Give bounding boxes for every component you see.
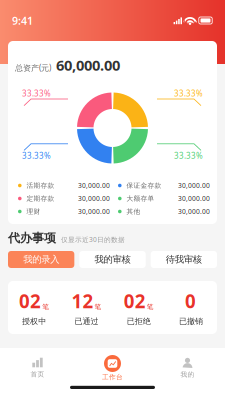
staticText: 首页: [30, 370, 44, 378]
staticText: 已通过: [74, 316, 98, 326]
staticText: 笔: [94, 303, 101, 311]
staticText: 大额存单: [127, 194, 155, 203]
staticText: 活期存款: [27, 181, 55, 190]
staticText: 工作台: [102, 373, 123, 381]
staticText: 33.33%: [22, 150, 51, 161]
staticText: 理财: [27, 207, 41, 216]
staticText: 33.33%: [174, 88, 203, 99]
staticText: 30,000.00: [78, 194, 110, 203]
staticText: 33.33%: [174, 150, 203, 161]
button[interactable]: 工作台: [75, 355, 150, 381]
button[interactable]: 首页: [0, 358, 75, 378]
staticText: 我的审核: [94, 254, 130, 265]
staticText: 已拒绝: [127, 316, 151, 326]
staticText: 已撤销: [179, 316, 203, 326]
staticText: 授权中: [22, 316, 46, 326]
staticText: 仅显示近30日的数据: [61, 235, 125, 244]
staticText: 0: [185, 289, 196, 313]
button[interactable]: 我的录入: [8, 251, 74, 268]
staticText: 笔: [147, 303, 154, 311]
staticText: 代办事项: [8, 231, 56, 245]
staticText: 30,000.00: [178, 181, 210, 190]
staticText: 保证金存款: [127, 181, 162, 190]
staticText: 30,000.00: [78, 207, 110, 216]
staticText: 定期存款: [27, 194, 55, 203]
staticText: 33.33%: [22, 88, 51, 99]
staticText: 60,000.00: [56, 55, 120, 75]
button[interactable]: 我的: [150, 358, 225, 379]
staticText: 30,000.00: [178, 194, 210, 203]
staticText: 30,000.00: [78, 181, 110, 190]
staticText: 待我审核: [166, 254, 202, 265]
staticText: 其他: [127, 207, 141, 216]
staticText: 12: [71, 289, 93, 313]
button[interactable]: 我的审核: [79, 251, 146, 268]
staticText: 我的: [180, 370, 194, 379]
button[interactable]: 待我审核: [151, 251, 217, 268]
staticText: 02: [124, 289, 146, 313]
staticText: 笔: [42, 303, 49, 311]
staticText: 02: [19, 289, 41, 313]
staticText: 30,000.00: [178, 207, 210, 216]
staticText: 我的录入: [23, 254, 59, 265]
staticText: 总资产(元): [15, 62, 51, 73]
staticText: 9:41: [12, 13, 33, 28]
